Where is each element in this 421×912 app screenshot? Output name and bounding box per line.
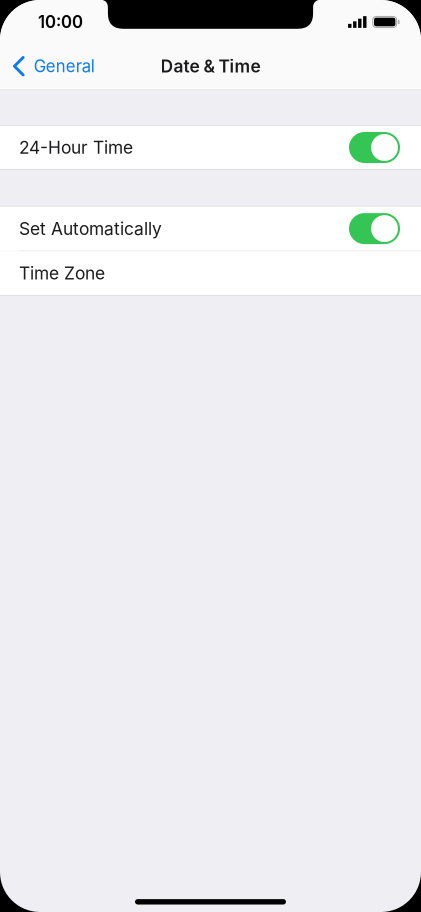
staticText: 24-Hour Time [19,137,133,158]
staticText: General [34,56,95,76]
button[interactable]: On [0,207,421,251]
button[interactable]: General [0,44,105,89]
button[interactable]: Time Zone [0,251,421,295]
staticText: Time Zone [19,263,105,284]
staticText: Date & Time [160,56,260,77]
staticText: Set Automatically [19,218,162,239]
staticText: 10:00 [38,12,83,32]
button[interactable]: On [0,126,421,169]
